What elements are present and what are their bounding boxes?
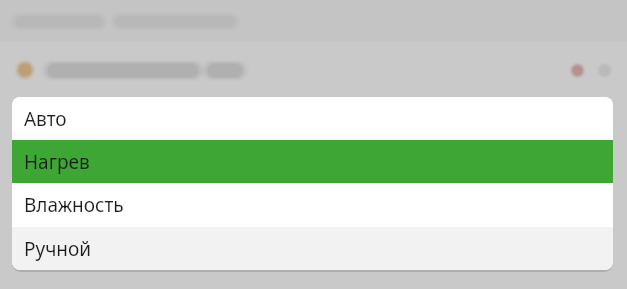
staticText: Влажность — [24, 192, 124, 218]
staticText: Нагрев — [24, 149, 90, 175]
button[interactable]: Нагрев — [12, 140, 613, 183]
button[interactable] — [0, 42, 627, 98]
button[interactable]: Влажность — [12, 183, 613, 227]
button[interactable]: Авто — [12, 97, 613, 140]
button[interactable]: Ручной — [12, 227, 613, 270]
staticText: Ручной — [24, 236, 92, 262]
staticText: Авто — [24, 106, 67, 132]
